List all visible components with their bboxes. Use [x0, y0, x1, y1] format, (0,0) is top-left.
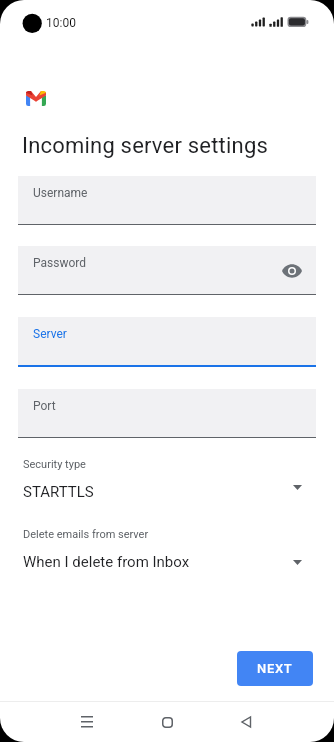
staticText: Port: [33, 399, 56, 413]
staticText: When I delete from Inbox: [23, 553, 293, 571]
button[interactable]: Show password: [280, 259, 304, 283]
staticText: Password: [33, 256, 87, 270]
staticText: Server: [33, 327, 67, 341]
button[interactable]: Back: [222, 702, 270, 742]
button[interactable]: Port: [18, 389, 316, 438]
button[interactable]: Delete emails from server: [23, 528, 316, 571]
button[interactable]: Username: [18, 176, 316, 225]
staticText: NEXT: [257, 661, 293, 676]
button[interactable]: Recent apps: [63, 702, 111, 742]
button[interactable]: Server: [18, 317, 316, 367]
staticText: 10:00: [46, 16, 76, 30]
staticText: STARTTLS: [23, 483, 293, 501]
button[interactable]: Home: [143, 702, 191, 742]
staticText: Security type: [23, 458, 86, 471]
staticText: Incoming server settings: [22, 133, 268, 159]
button[interactable]: Security type: [23, 458, 316, 501]
button[interactable]: Password: [18, 246, 316, 295]
button[interactable]: NEXT: [237, 651, 313, 686]
staticText: Delete emails from server: [23, 528, 149, 541]
staticText: Username: [33, 186, 88, 200]
